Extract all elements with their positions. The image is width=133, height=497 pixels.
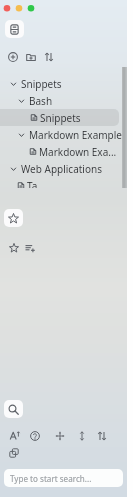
button[interactable]: New folder: [22, 48, 40, 66]
button[interactable]: Favorite: [5, 239, 23, 257]
staticText: Snippets: [21, 77, 62, 91]
staticText: Markdown Example: [29, 128, 122, 142]
button[interactable]: Web Applications: [0, 160, 133, 177]
button[interactable]: Snippets: [0, 109, 133, 126]
button[interactable]: Toggle sidebar: [5, 20, 24, 38]
button[interactable]: Ta: [0, 177, 133, 188]
staticText: Snippets: [40, 111, 81, 125]
button[interactable]: Duplicate: [5, 444, 23, 462]
button[interactable]: Help: [26, 427, 44, 445]
staticText: Markdown Exa...: [39, 145, 117, 159]
staticText: Web Applications: [21, 162, 102, 176]
button[interactable]: Move: [51, 427, 69, 445]
button[interactable]: Resize: [73, 427, 91, 445]
button[interactable]: Add to list: [21, 239, 39, 257]
button[interactable]: Add snippet: [4, 48, 22, 66]
staticText: Bash: [29, 94, 53, 108]
button[interactable]: Snippets: [0, 75, 133, 92]
staticText: Ta: [27, 179, 38, 188]
button[interactable]: Search: [4, 400, 23, 418]
button[interactable]: Favorites: [4, 209, 23, 227]
button[interactable]: Text size: [6, 427, 24, 445]
button[interactable]: Sort order: [93, 427, 111, 445]
button[interactable]: Bash: [0, 92, 133, 109]
button[interactable]: Markdown Exa...: [0, 143, 133, 160]
button[interactable]: Type to start search...: [4, 469, 123, 487]
button[interactable]: Sort: [40, 48, 58, 66]
staticText: Type to start search...: [10, 473, 92, 484]
button[interactable]: Markdown Example: [0, 126, 133, 143]
